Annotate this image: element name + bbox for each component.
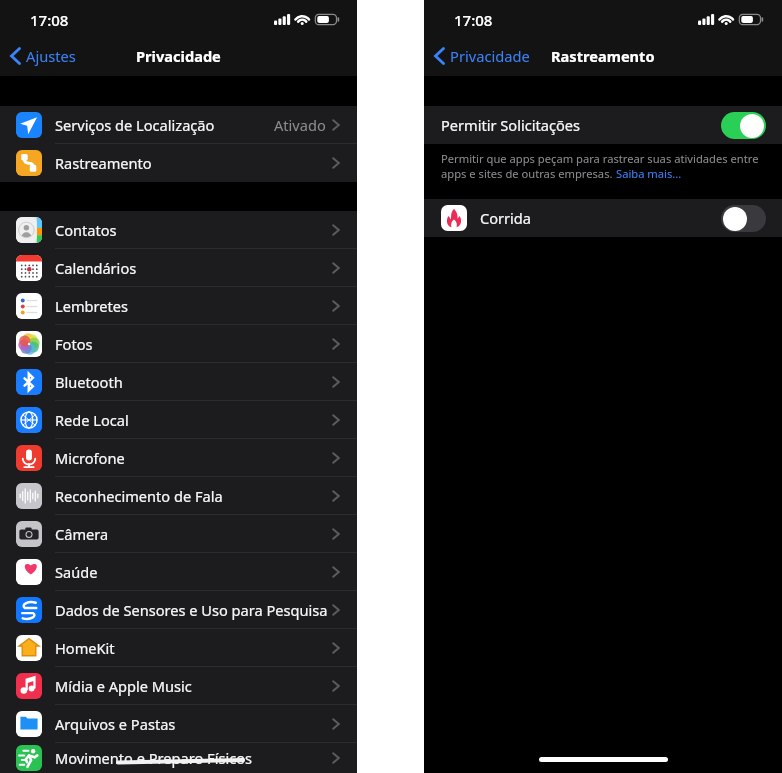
button[interactable]: Microfone (0, 439, 357, 477)
button[interactable]: Permitir Solicitações (424, 106, 782, 144)
button[interactable]: Privacidade (434, 46, 530, 66)
staticText: Saiba mais... (616, 166, 682, 181)
button[interactable]: Serviços de Localização (0, 106, 357, 144)
button[interactable]: Câmera (0, 515, 357, 553)
button[interactable]: Dados de Sensores e Uso para Pesquisa (0, 591, 357, 629)
staticText: Serviços de Localização (55, 115, 274, 135)
staticText: Rastreamento (55, 153, 332, 173)
staticText: Arquivos e Pastas (55, 714, 332, 734)
button[interactable]: Movimento e Preparo Físicos (0, 743, 357, 773)
staticText: Câmera (55, 524, 332, 544)
staticText: Permitir Solicitações (441, 115, 721, 135)
button[interactable]: Switch on (721, 112, 766, 139)
button[interactable]: Ajustes (10, 46, 76, 66)
staticText: Reconhecimento de Fala (55, 486, 332, 506)
button[interactable]: Arquivos e Pastas (0, 705, 357, 743)
staticText: Calendários (55, 258, 332, 278)
button[interactable]: Mídia e Apple Music (0, 667, 357, 705)
staticText: Saúde (55, 562, 332, 582)
staticText: Dados de Sensores e Uso para Pesquisa (55, 600, 332, 620)
button[interactable]: Bluetooth (0, 363, 357, 401)
button[interactable]: Rede Local (0, 401, 357, 439)
staticText: Ativado (274, 115, 326, 135)
staticText: Privacidade (136, 46, 221, 66)
staticText: Fotos (55, 334, 332, 354)
staticText: Privacidade (450, 46, 530, 66)
button[interactable]: Corrida (424, 199, 782, 237)
staticText: Rede Local (55, 410, 332, 430)
staticText: Movimento e Preparo Físicos (55, 748, 332, 768)
staticText: Corrida (480, 208, 721, 228)
staticText: Permitir que apps peçam para rastrear su… (441, 151, 759, 166)
button[interactable]: Switch off (721, 205, 766, 232)
staticText: Bluetooth (55, 372, 332, 392)
button[interactable]: HomeKit (0, 629, 357, 667)
staticText: 17:08 (30, 10, 69, 30)
button[interactable]: Saúde (0, 553, 357, 591)
staticText: Mídia e Apple Music (55, 676, 332, 696)
button[interactable]: Rastreamento (0, 144, 357, 182)
button[interactable]: Fotos (0, 325, 357, 363)
staticText: HomeKit (55, 638, 332, 658)
staticText: Microfone (55, 448, 332, 468)
staticText: Rastreamento (551, 46, 655, 66)
button[interactable]: Lembretes (0, 287, 357, 325)
staticText: Ajustes (26, 46, 76, 66)
staticText: apps e sites de outras empresas. (441, 166, 616, 181)
button[interactable]: Reconhecimento de Fala (0, 477, 357, 515)
staticText: 17:08 (454, 10, 493, 30)
staticText: Lembretes (55, 296, 332, 316)
button[interactable]: Contatos (0, 211, 357, 249)
staticText: Contatos (55, 220, 332, 240)
button[interactable]: Calendários (0, 249, 357, 287)
